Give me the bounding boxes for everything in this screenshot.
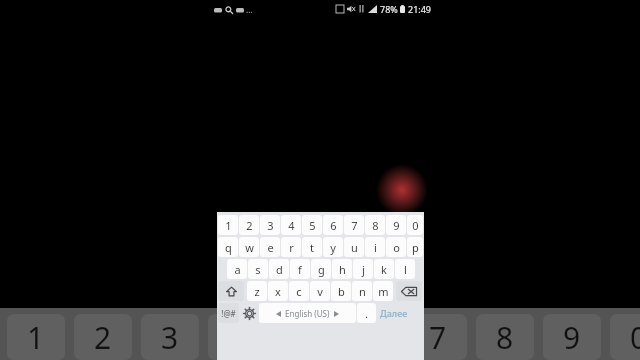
staticText: 6 <box>362 317 380 358</box>
staticText: 5 <box>295 317 313 358</box>
staticText: q <box>225 240 232 255</box>
button[interactable]: 2 <box>239 215 259 235</box>
staticText: 7 <box>351 218 358 233</box>
staticText: 8 <box>372 218 379 233</box>
button[interactable]: 0 <box>407 215 423 235</box>
staticText: !@# <box>221 308 236 319</box>
button[interactable]: q <box>218 237 238 257</box>
button[interactable]: 3 <box>141 314 199 360</box>
staticText: g <box>318 262 325 277</box>
staticText: y <box>330 240 336 255</box>
staticText: u <box>351 240 358 255</box>
button[interactable]: l <box>395 259 415 279</box>
button[interactable]: 4 <box>281 215 301 235</box>
button[interactable]: !@# <box>218 303 239 323</box>
staticText: 8 <box>496 317 514 358</box>
button[interactable]: Далее <box>377 303 410 323</box>
staticText: 1 <box>27 317 45 358</box>
staticText: l <box>404 262 407 277</box>
staticText: o <box>393 240 400 255</box>
staticText: 4 <box>288 218 295 233</box>
staticText: h <box>339 262 346 277</box>
button[interactable]: w <box>239 237 259 257</box>
button[interactable]: 2 <box>74 314 132 360</box>
staticText: x <box>275 284 281 299</box>
button[interactable]: 9 <box>386 215 406 235</box>
button[interactable]: 6 <box>323 215 343 235</box>
button[interactable]: 4 <box>208 314 266 360</box>
button[interactable]: Backspace <box>396 281 422 301</box>
button[interactable]: z <box>247 281 267 301</box>
button[interactable]: 3 <box>260 215 280 235</box>
button[interactable]: Keyboard settings <box>240 303 258 323</box>
staticText: t <box>310 240 314 255</box>
button[interactable]: h <box>332 259 352 279</box>
button[interactable]: j <box>353 259 373 279</box>
staticText: ... <box>246 4 253 15</box>
button[interactable]: v <box>310 281 330 301</box>
button[interactable]: English (US) <box>259 303 356 323</box>
button[interactable]: p <box>407 237 423 257</box>
button[interactable]: d <box>269 259 289 279</box>
staticText: 0 <box>412 218 419 233</box>
staticText: 1 <box>225 218 232 233</box>
staticText: 9 <box>563 317 581 358</box>
button[interactable]: 9 <box>543 314 601 360</box>
staticText: c <box>296 284 302 299</box>
button[interactable]: 6 <box>342 314 400 360</box>
button[interactable]: 7 <box>344 215 364 235</box>
button[interactable]: i <box>365 237 385 257</box>
staticText: b <box>338 284 345 299</box>
button[interactable]: 8 <box>365 215 385 235</box>
staticText: p <box>412 240 419 255</box>
button[interactable]: g <box>311 259 331 279</box>
staticText: w <box>245 240 254 255</box>
button[interactable]: 7 <box>409 314 467 360</box>
button[interactable]: a <box>227 259 247 279</box>
staticText: v <box>317 284 323 299</box>
button[interactable]: x <box>268 281 288 301</box>
button[interactable]: 1 <box>7 314 65 360</box>
staticText: 3 <box>161 317 179 358</box>
staticText: . <box>365 306 368 321</box>
staticText: z <box>254 284 260 299</box>
staticText: a <box>234 262 241 277</box>
button[interactable]: c <box>289 281 309 301</box>
button[interactable]: 0 <box>610 314 640 360</box>
button[interactable]: n <box>352 281 372 301</box>
button[interactable]: e <box>260 237 280 257</box>
staticText: Далее <box>380 307 408 319</box>
button[interactable]: 5 <box>302 215 322 235</box>
button[interactable]: k <box>374 259 394 279</box>
staticText: 78% <box>380 3 398 15</box>
button[interactable]: y <box>323 237 343 257</box>
staticText: r <box>289 240 294 255</box>
button[interactable]: Shift <box>218 281 244 301</box>
staticText: 2 <box>94 317 112 358</box>
button[interactable]: 5 <box>275 314 333 360</box>
staticText: m <box>378 284 389 299</box>
button[interactable]: u <box>344 237 364 257</box>
staticText: 7 <box>429 317 447 358</box>
staticText: 21:49 <box>408 3 432 15</box>
staticText: 9 <box>393 218 400 233</box>
staticText: e <box>267 240 274 255</box>
button[interactable]: . <box>357 303 376 323</box>
staticText: 4 <box>228 317 246 358</box>
staticText: k <box>381 262 387 277</box>
button[interactable]: m <box>373 281 393 301</box>
button[interactable]: o <box>386 237 406 257</box>
staticText: 0 <box>630 317 640 358</box>
button[interactable]: t <box>302 237 322 257</box>
staticText: 6 <box>330 218 337 233</box>
button[interactable]: r <box>281 237 301 257</box>
staticText: j <box>362 262 365 277</box>
staticText: 2 <box>246 218 253 233</box>
button[interactable]: 1 <box>218 215 238 235</box>
button[interactable]: f <box>290 259 310 279</box>
staticText: n <box>359 284 366 299</box>
staticText: 5 <box>309 218 316 233</box>
button[interactable]: b <box>331 281 351 301</box>
button[interactable]: 8 <box>476 314 534 360</box>
button[interactable]: s <box>248 259 268 279</box>
